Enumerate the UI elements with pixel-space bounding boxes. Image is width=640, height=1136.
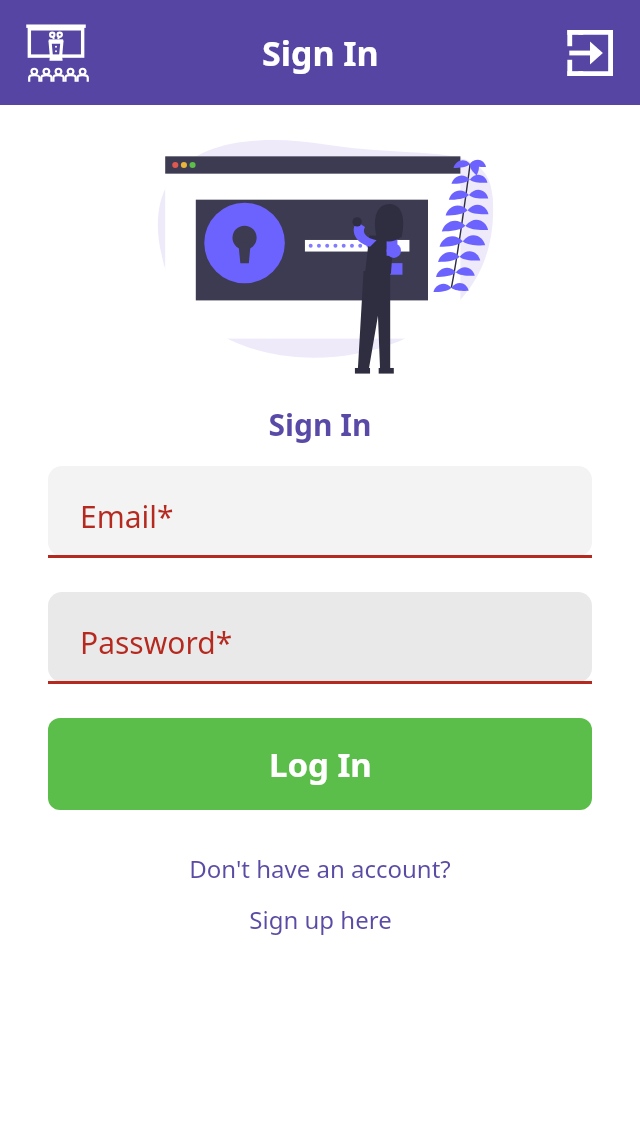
staticText: Sign up here xyxy=(249,903,392,936)
button[interactable]: Sign in xyxy=(556,19,624,87)
button[interactable]: Conference xyxy=(14,11,98,95)
staticText: Don't have an account? xyxy=(189,852,451,885)
button[interactable]: Email* xyxy=(48,466,592,558)
staticText: Password* xyxy=(80,622,233,663)
button[interactable]: Log In xyxy=(48,718,592,810)
staticText: Log In xyxy=(269,742,372,787)
staticText: Email* xyxy=(80,496,174,537)
staticText: Sign In xyxy=(0,404,640,445)
button[interactable]: Sign up here xyxy=(0,903,640,936)
button[interactable]: Password* xyxy=(48,592,592,684)
staticText: Sign In xyxy=(262,30,379,76)
button[interactable]: Don't have an account? xyxy=(0,852,640,885)
